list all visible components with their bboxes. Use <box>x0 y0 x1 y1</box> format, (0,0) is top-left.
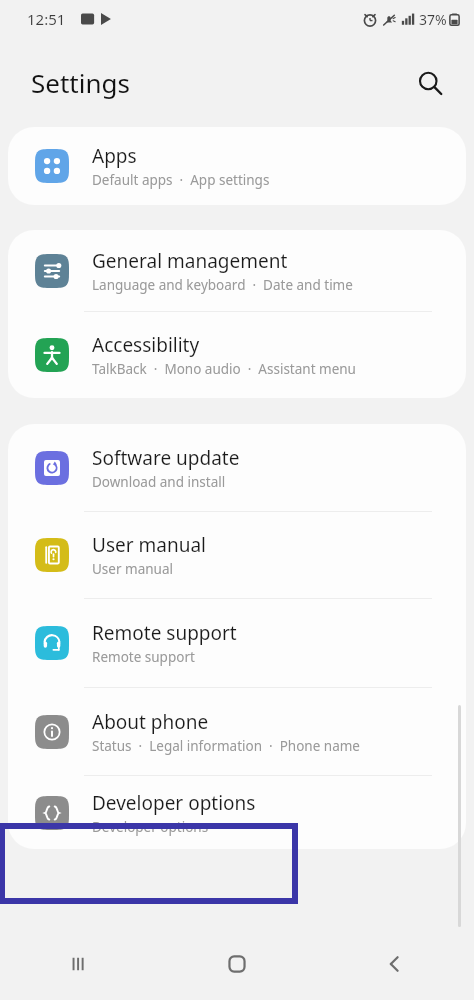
button[interactable]: Apps <box>8 127 466 205</box>
staticText: Settings <box>31 65 130 100</box>
staticText: Download and install <box>92 473 226 491</box>
staticText: Remote support <box>92 620 237 646</box>
button[interactable]: Back <box>316 928 474 1000</box>
staticText: General management <box>92 248 288 274</box>
button[interactable]: Developer options <box>8 776 466 849</box>
staticText: User manual <box>92 532 206 558</box>
staticText: Apps <box>92 143 137 169</box>
button[interactable]: About phone <box>8 688 466 775</box>
staticText: Developer options <box>92 818 209 836</box>
staticText: Remote support <box>92 648 195 666</box>
staticText: 12:51 <box>27 9 66 29</box>
staticText: Accessibility <box>92 332 200 358</box>
button[interactable]: Recents <box>0 928 158 1000</box>
button[interactable]: Home <box>158 928 316 1000</box>
button[interactable]: General management <box>8 230 466 311</box>
staticText: 37% <box>419 10 447 29</box>
staticText: Software update <box>92 445 240 471</box>
staticText: TalkBack · Mono audio · Assistant menu <box>92 360 356 378</box>
staticText: Developer options <box>92 790 256 816</box>
button[interactable]: Remote support <box>8 599 466 687</box>
button[interactable]: Software update <box>8 424 466 511</box>
staticText: Language and keyboard · Date and time <box>92 276 353 294</box>
staticText: About phone <box>92 709 209 735</box>
staticText: User manual <box>92 560 173 578</box>
button[interactable]: Accessibility <box>8 312 466 398</box>
staticText: Status · Legal information · Phone name <box>92 737 360 755</box>
button[interactable]: Search <box>408 61 452 105</box>
staticText: Default apps · App settings <box>92 171 270 189</box>
button[interactable]: User manual <box>8 512 466 598</box>
